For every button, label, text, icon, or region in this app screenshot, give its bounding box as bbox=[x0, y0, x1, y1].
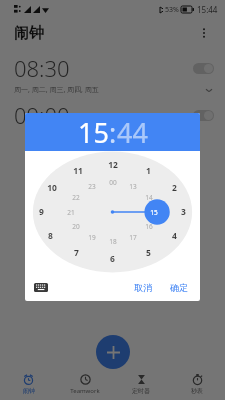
staticText: 20 bbox=[72, 222, 80, 231]
staticText: 12 bbox=[108, 159, 118, 171]
staticText: Teamwork bbox=[70, 387, 100, 395]
button[interactable]: 08:30 bbox=[0, 48, 225, 95]
button[interactable]: Alarm tab bbox=[0, 368, 57, 400]
button[interactable]: 15 bbox=[78, 114, 109, 151]
staticText: 16 bbox=[145, 222, 153, 231]
button[interactable]: More options bbox=[193, 22, 215, 44]
staticText: 00 bbox=[109, 178, 117, 187]
staticText: 19 bbox=[88, 233, 96, 242]
staticText: 18 bbox=[109, 237, 117, 246]
staticText: 闹钟 bbox=[23, 387, 35, 395]
staticText: 闹钟 bbox=[14, 24, 44, 43]
staticText: 秒表 bbox=[191, 387, 203, 395]
button[interactable]: 确定 bbox=[164, 278, 194, 297]
button[interactable]: 44 bbox=[117, 114, 148, 151]
staticText: 44 bbox=[117, 114, 148, 151]
staticText: 15:44 bbox=[197, 4, 218, 15]
staticText: 周一, 周二, 周三, 周四, 周五 bbox=[14, 85, 99, 95]
staticText: 4 bbox=[172, 230, 177, 242]
staticText: 14 bbox=[145, 193, 153, 202]
staticText: 取消 bbox=[134, 282, 152, 293]
button[interactable]: Keyboard input bbox=[31, 277, 51, 297]
staticText: 3 bbox=[181, 206, 186, 218]
staticText: 9 bbox=[39, 206, 44, 218]
button[interactable]: Toggle alarm 09:00 bbox=[193, 110, 214, 121]
button[interactable]: 09:00 bbox=[0, 95, 225, 130]
staticText: 15 bbox=[150, 208, 158, 217]
staticText: 7 bbox=[74, 247, 79, 259]
staticText: 17 bbox=[129, 233, 137, 242]
staticText: 1 bbox=[146, 165, 151, 177]
staticText: 15 bbox=[78, 114, 109, 151]
staticText: 21 bbox=[67, 208, 75, 217]
staticText: 5 bbox=[146, 247, 151, 259]
staticText: 13 bbox=[129, 182, 137, 191]
staticText: 6 bbox=[110, 253, 115, 265]
staticText: : bbox=[109, 114, 117, 151]
staticText: 08:30 bbox=[14, 53, 70, 83]
staticText: 定时器 bbox=[132, 387, 150, 395]
button[interactable]: Stopwatch tab bbox=[169, 368, 225, 400]
staticText: 53% bbox=[165, 5, 179, 15]
button[interactable]: Teamwork tab bbox=[57, 368, 113, 400]
staticText: 09:00 bbox=[14, 100, 70, 130]
staticText: 10 bbox=[47, 182, 57, 194]
staticText: 11 bbox=[73, 165, 83, 177]
staticText: 8 bbox=[48, 230, 53, 242]
staticText: 确定 bbox=[170, 282, 188, 293]
staticText: 23 bbox=[88, 182, 96, 191]
staticText: 2 bbox=[172, 182, 177, 194]
button[interactable]: Add alarm bbox=[96, 335, 130, 369]
button[interactable]: 取消 bbox=[128, 278, 158, 297]
staticText: 22 bbox=[72, 193, 80, 202]
button[interactable]: Timer tab bbox=[113, 368, 169, 400]
button[interactable]: Toggle alarm 08:30 bbox=[193, 63, 214, 74]
